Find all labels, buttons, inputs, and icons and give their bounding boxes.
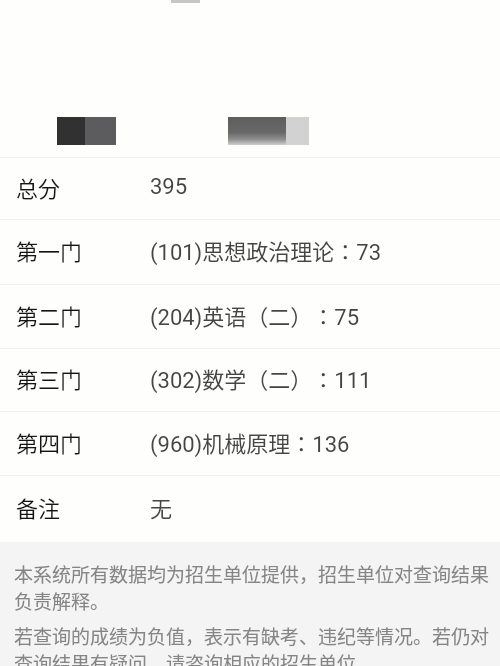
staticText: 第四门 <box>16 426 83 458</box>
staticText: (101)思想政治理论：73 <box>150 234 382 266</box>
staticText: 若查询的成绩为负值，表示有缺考、违纪等情况。若仍对查询结果有疑问，请咨询相应的招… <box>14 622 494 666</box>
button[interactable]: 第一门 <box>0 220 500 285</box>
staticText: 第二门 <box>16 299 83 331</box>
staticText: 无 <box>150 491 173 523</box>
staticText: 总分 <box>16 171 61 203</box>
staticText: 备注 <box>16 491 61 523</box>
staticText: 第一门 <box>16 234 83 266</box>
staticText: 第三门 <box>16 362 83 394</box>
button[interactable]: 第三门 <box>0 349 500 412</box>
staticText: 395 <box>150 174 188 200</box>
staticText: 本系统所有数据均为招生单位提供，招生单位对查询结果负责解释。 <box>14 560 494 614</box>
button[interactable]: 第二门 <box>0 285 500 349</box>
staticText: (204)英语（二）：75 <box>150 299 360 331</box>
button[interactable]: 第四门 <box>0 412 500 476</box>
staticText: (302)数学（二）：111 <box>150 362 372 394</box>
button[interactable]: 总分 <box>0 158 500 220</box>
staticText: (960)机械原理：136 <box>150 426 350 458</box>
other: Candidate name and ticket number <box>0 117 500 145</box>
button[interactable]: 备注 <box>0 476 500 542</box>
